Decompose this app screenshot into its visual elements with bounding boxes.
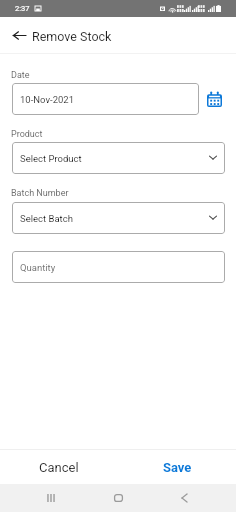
button[interactable]: Recent apps <box>30 484 72 512</box>
staticText: 10-Nov-2021 <box>20 94 75 105</box>
button[interactable]: Cancel <box>0 450 118 484</box>
button[interactable]: Home <box>97 484 139 512</box>
button[interactable]: Back <box>3 17 35 53</box>
staticText: 2:37 <box>15 4 30 13</box>
staticText: Product <box>11 129 43 140</box>
button[interactable]: Save <box>118 450 236 484</box>
staticText: Date <box>11 70 30 81</box>
staticText: Quantity <box>20 262 56 273</box>
button[interactable]: Pick date <box>205 90 223 108</box>
button[interactable]: Back <box>163 484 205 512</box>
staticText: Batch Number <box>11 188 69 199</box>
staticText: Select Product <box>20 153 82 164</box>
staticText: Select Batch <box>20 213 73 224</box>
button[interactable]: Quantity <box>12 251 225 283</box>
button[interactable]: Select Product <box>12 142 225 174</box>
button[interactable]: 10-Nov-2021 <box>12 83 199 115</box>
staticText: Save <box>163 460 192 475</box>
staticText: Remove Stock <box>32 29 112 44</box>
button[interactable]: Select Batch <box>12 202 225 234</box>
staticText: Cancel <box>39 460 79 475</box>
